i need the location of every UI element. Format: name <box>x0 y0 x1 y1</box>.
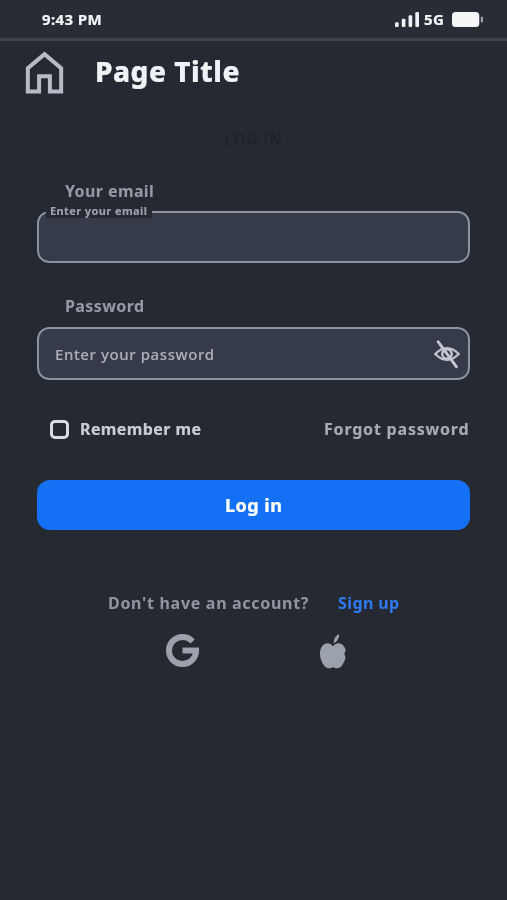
staticText: Log in <box>225 493 283 518</box>
staticText: 5G <box>424 9 445 29</box>
button[interactable] <box>166 634 199 667</box>
button[interactable] <box>319 633 347 668</box>
button[interactable]: Enter your password <box>37 327 470 380</box>
button[interactable] <box>50 420 69 439</box>
staticText: Your email <box>65 180 155 202</box>
staticText: Enter your email <box>50 203 148 218</box>
staticText: Don't have an account? <box>108 592 310 614</box>
staticText: Password <box>65 295 145 317</box>
staticText: Page Title <box>95 52 240 90</box>
staticText: Enter your password <box>55 344 215 364</box>
staticText: Remember me <box>80 418 202 440</box>
button[interactable]: Forgot password <box>324 418 470 440</box>
button[interactable] <box>37 211 470 263</box>
button[interactable]: Log in <box>37 480 470 530</box>
button[interactable] <box>22 51 67 96</box>
button[interactable]: Sign up <box>338 592 400 614</box>
staticText: 9:43 PM <box>42 9 103 29</box>
